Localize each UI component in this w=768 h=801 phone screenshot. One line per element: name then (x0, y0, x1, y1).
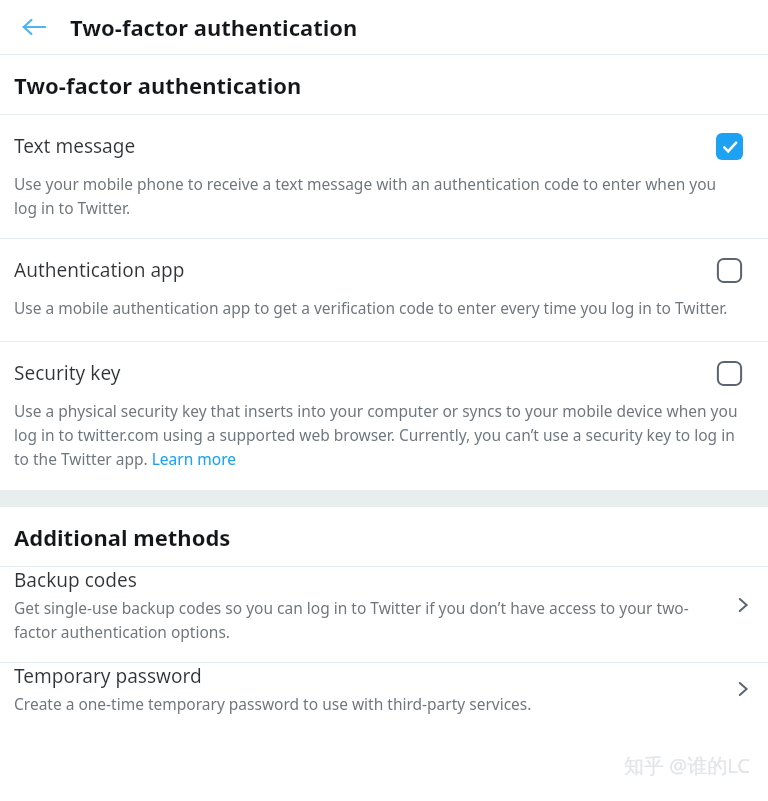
staticText: Use your mobile phone to receive a text … (14, 173, 742, 218)
button[interactable]: Backup codes (0, 567, 768, 662)
staticText: Use a physical security key that inserts… (14, 400, 742, 469)
staticText: Create a one-time temporary password to … (14, 693, 532, 714)
button[interactable]: Authentication app checkbox (716, 257, 743, 284)
staticText: Temporary password (14, 663, 202, 689)
staticText: Use a mobile authentication app to get a… (14, 297, 728, 318)
button[interactable]: Text message (0, 115, 768, 238)
button[interactable]: Security key (0, 342, 768, 490)
button[interactable]: Security key checkbox (716, 360, 743, 387)
staticText: Security key (14, 360, 716, 386)
button[interactable]: Text message enabled (716, 133, 743, 160)
button[interactable]: Authentication app (0, 239, 768, 341)
staticText: Backup codes (14, 567, 137, 593)
staticText: 知乎 @谁的LC (624, 752, 750, 779)
staticText: Authentication app (14, 257, 716, 283)
button[interactable]: Back (12, 5, 56, 49)
staticText: Get single-use backup codes so you can l… (14, 597, 702, 642)
staticText: Two-factor authentication (70, 12, 358, 42)
staticText: Text message (14, 133, 716, 159)
staticText: Additional methods (14, 522, 231, 552)
staticText: Two-factor authentication (14, 70, 302, 100)
button[interactable]: Temporary password (0, 663, 768, 733)
